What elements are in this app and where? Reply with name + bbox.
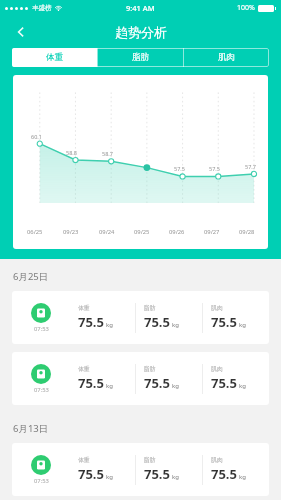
button[interactable]: Back xyxy=(6,17,36,47)
button[interactable]: 07:53 xyxy=(12,291,269,344)
staticText: 09/23 xyxy=(63,228,79,236)
staticText: 57.5 xyxy=(209,165,220,172)
staticText: 09/25 xyxy=(134,228,150,236)
staticText: 肌肉 xyxy=(211,365,223,372)
staticText: 脂肪 xyxy=(132,52,149,63)
staticText: 肌肉 xyxy=(211,304,223,311)
staticText: 肌肉 xyxy=(211,456,223,463)
staticText: kg xyxy=(106,473,113,481)
staticText: 9:41 AM xyxy=(126,3,155,13)
staticText: 60.1 xyxy=(31,133,42,140)
staticText: 07:53 xyxy=(34,386,49,394)
staticText: 09/26 xyxy=(169,228,185,236)
staticText: 75.5 xyxy=(144,313,170,331)
staticText: 57.5 xyxy=(174,165,185,172)
staticText: kg xyxy=(239,473,246,481)
staticText: 75.5 xyxy=(144,465,170,483)
staticText: 丰盛榜 xyxy=(32,4,52,12)
staticText: kg xyxy=(172,382,179,390)
staticText: 75.5 xyxy=(78,374,104,392)
button[interactable]: 07:53 xyxy=(12,443,269,496)
staticText: 脂肪 xyxy=(144,456,156,463)
staticText: 09/24 xyxy=(99,228,115,236)
staticText: 体重 xyxy=(78,456,90,463)
staticText: 趋势分析 xyxy=(115,24,167,40)
staticText: 脂肪 xyxy=(144,365,156,372)
staticText: 75.5 xyxy=(211,313,237,331)
staticText: 75.5 xyxy=(211,465,237,483)
button[interactable]: 60.1 xyxy=(13,75,268,249)
staticText: 体重 xyxy=(46,52,63,63)
staticText: 体重 xyxy=(78,304,90,311)
staticText: kg xyxy=(239,321,246,329)
staticText: 09/28 xyxy=(239,228,255,236)
staticText: 07:53 xyxy=(34,477,49,485)
staticText: 脂肪 xyxy=(144,304,156,311)
staticText: 57.7 xyxy=(245,163,256,170)
staticText: 75.5 xyxy=(211,374,237,392)
button[interactable]: 肌肉 xyxy=(184,48,269,67)
staticText: 100% xyxy=(237,3,255,13)
staticText: 75.5 xyxy=(78,313,104,331)
staticText: 肌肉 xyxy=(218,52,235,63)
staticText: 75.5 xyxy=(144,374,170,392)
staticText: kg xyxy=(106,382,113,390)
staticText: kg xyxy=(239,382,246,390)
staticText: kg xyxy=(172,473,179,481)
staticText: 体重 xyxy=(78,365,90,372)
staticText: 07:53 xyxy=(34,325,49,333)
staticText: 6月25日 xyxy=(13,270,49,283)
staticText: 58.8 xyxy=(66,149,77,156)
staticText: kg xyxy=(172,321,179,329)
staticText: 09/27 xyxy=(204,228,220,236)
staticText: 6月13日 xyxy=(13,422,49,435)
staticText: 58.7 xyxy=(102,150,113,157)
staticText: 75.5 xyxy=(78,465,104,483)
button[interactable]: 07:53 xyxy=(12,352,269,405)
staticText: kg xyxy=(106,321,113,329)
button[interactable]: 体重 xyxy=(12,48,97,67)
button[interactable]: 脂肪 xyxy=(98,48,183,67)
staticText: 06/25 xyxy=(27,228,43,236)
